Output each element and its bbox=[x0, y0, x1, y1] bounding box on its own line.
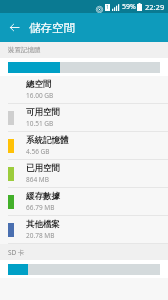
staticText: 緩存數據 bbox=[26, 191, 60, 202]
staticText: 其他檔案 bbox=[26, 219, 60, 230]
staticText: 864 MB bbox=[26, 175, 49, 184]
staticText: 16.00 GB bbox=[26, 91, 54, 100]
staticText: 總空間 bbox=[26, 79, 52, 90]
staticText: 裝置記憶體 bbox=[8, 46, 41, 54]
button[interactable]: 可用空間 bbox=[0, 104, 168, 131]
staticText: 20.78 MB bbox=[26, 231, 55, 240]
button[interactable]: 緩存數據 bbox=[0, 188, 168, 215]
button[interactable]: 已用空間 bbox=[0, 160, 168, 187]
staticText: 66.79 MB bbox=[26, 203, 55, 212]
button[interactable]: 其他檔案 bbox=[0, 216, 168, 243]
staticText: SD 卡 bbox=[8, 248, 25, 257]
button[interactable]: 系統記憶體 bbox=[0, 132, 168, 159]
staticText: 4.56 GB bbox=[26, 147, 50, 156]
button[interactable]: Back bbox=[0, 13, 29, 42]
staticText: 1 bbox=[106, 4, 109, 11]
staticText: 59% bbox=[122, 2, 136, 12]
staticText: 可用空間 bbox=[26, 107, 60, 118]
staticText: 22:29 bbox=[145, 2, 165, 12]
staticText: 系統記憶體 bbox=[26, 135, 69, 146]
button[interactable]: 總空間 bbox=[0, 76, 168, 103]
staticText: 已用空間 bbox=[26, 163, 60, 174]
staticText: 10.51 GB bbox=[26, 119, 54, 128]
staticText: 儲存空間 bbox=[29, 21, 75, 35]
